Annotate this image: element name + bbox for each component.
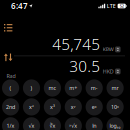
staticText: x³ (50, 103, 55, 110)
staticText: x² (29, 103, 34, 110)
button[interactable]: mr (106, 79, 124, 97)
staticText: Rad (6, 72, 15, 80)
button[interactable]: 10ˣ (106, 98, 124, 115)
button[interactable]: 2nd (2, 98, 19, 115)
staticText: 6:47 (11, 1, 28, 11)
button[interactable]: log₁₀ (106, 117, 124, 130)
staticText: 30.5 (69, 56, 100, 76)
button[interactable]: 1/x (2, 117, 19, 130)
button[interactable]: ) (23, 79, 40, 97)
staticText: 52 (120, 3, 124, 9)
staticText: ʸ√x (69, 122, 77, 129)
staticText: ( (10, 84, 12, 92)
button[interactable]: eˣ (86, 98, 103, 115)
staticText: √x (28, 122, 34, 129)
button[interactable]: Swap currencies (1, 50, 15, 64)
staticText: 2nd (6, 103, 15, 110)
staticText: 1/x (7, 122, 15, 129)
button[interactable]: ln (86, 117, 103, 130)
staticText: ∛x (49, 122, 55, 129)
staticText: ) (30, 84, 32, 92)
staticText: log₁₀ (110, 122, 121, 129)
staticText: m- (91, 84, 98, 92)
button[interactable]: KRW (100, 46, 120, 54)
staticText: HKD (103, 68, 114, 75)
staticText: mc (48, 84, 56, 92)
staticText: m+ (69, 84, 77, 92)
button[interactable]: xʸ (65, 98, 82, 115)
button[interactable]: HKD (100, 68, 120, 76)
button[interactable]: History (1, 21, 15, 34)
staticText: eˣ (92, 103, 97, 110)
button[interactable]: ( (2, 79, 19, 97)
button[interactable]: x² (23, 98, 40, 115)
button[interactable]: m+ (65, 79, 82, 97)
button[interactable]: x³ (44, 98, 61, 115)
staticText: xʸ (71, 103, 76, 110)
staticText: LTE (107, 2, 116, 10)
staticText: mr (112, 84, 119, 92)
button[interactable]: ʸ√x (65, 117, 82, 130)
staticText: KRW (103, 46, 114, 53)
button[interactable]: mc (44, 79, 61, 97)
staticText: ln (92, 122, 96, 129)
button[interactable]: ∛x (44, 117, 61, 130)
button[interactable]: m- (86, 79, 103, 97)
staticText: 10ˣ (111, 103, 119, 110)
staticText: 45,745 (52, 34, 100, 54)
button[interactable]: √x (23, 117, 40, 130)
